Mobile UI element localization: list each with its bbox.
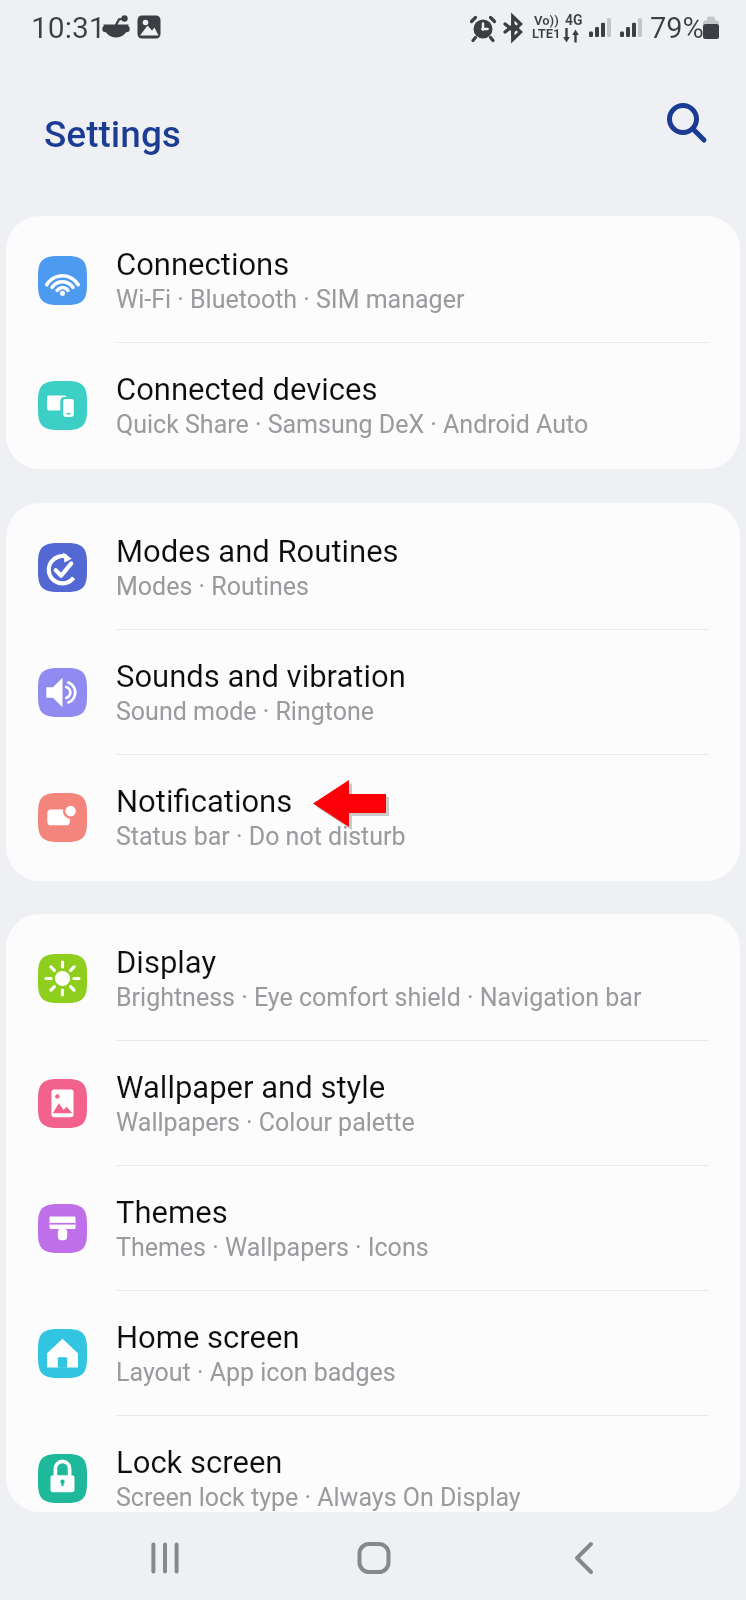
staticText: 10:31	[31, 10, 106, 45]
button[interactable]: Wallpaper and style	[6, 1041, 740, 1165]
staticText: Themes · Wallpapers · Icons	[116, 1233, 429, 1262]
button[interactable]: Home	[332, 1516, 416, 1600]
staticText: Connected devices	[116, 371, 378, 407]
staticText: Wi-Fi · Bluetooth · SIM manager	[116, 285, 465, 314]
staticText: Wallpapers · Colour palette	[116, 1108, 415, 1137]
staticText: Quick Share · Samsung DeX · Android Auto	[116, 410, 589, 439]
button[interactable]: Sounds and vibration	[6, 630, 740, 754]
staticText: Display	[116, 944, 217, 980]
staticText: Themes	[116, 1194, 228, 1230]
staticText: Brightness · Eye comfort shield · Naviga…	[116, 983, 642, 1012]
staticText: 4G	[565, 12, 583, 28]
staticText: Home screen	[116, 1319, 300, 1355]
button[interactable]: Notifications	[6, 755, 740, 879]
button[interactable]: Display	[6, 916, 740, 1040]
staticText: Sound mode · Ringtone	[116, 697, 375, 726]
staticText: 79%	[650, 11, 704, 45]
button[interactable]: Search	[655, 93, 711, 149]
staticText: Modes and Routines	[116, 533, 399, 569]
button[interactable]: Themes	[6, 1166, 740, 1290]
staticText: Connections	[116, 246, 290, 282]
staticText: Vo))	[534, 13, 559, 28]
button[interactable]: Home screen	[6, 1291, 740, 1415]
staticText: Status bar · Do not disturb	[116, 822, 406, 851]
staticText: Notifications	[116, 783, 293, 819]
button[interactable]: Connections	[6, 218, 740, 342]
staticText: Screen lock type · Always On Display	[116, 1483, 521, 1512]
staticText: Lock screen	[116, 1444, 283, 1480]
staticText: Settings	[44, 113, 181, 156]
staticText: Modes · Routines	[116, 572, 309, 601]
button[interactable]: Modes and Routines	[6, 505, 740, 629]
staticText: Layout · App icon badges	[116, 1358, 396, 1387]
button[interactable]: Recent apps	[123, 1516, 207, 1600]
staticText: Sounds and vibration	[116, 658, 406, 694]
button[interactable]: Back	[542, 1516, 626, 1600]
staticText: LTE1	[532, 26, 561, 41]
button[interactable]: Connected devices	[6, 343, 740, 467]
staticText: Wallpaper and style	[116, 1069, 386, 1105]
button[interactable]: Lock screen	[6, 1416, 740, 1512]
